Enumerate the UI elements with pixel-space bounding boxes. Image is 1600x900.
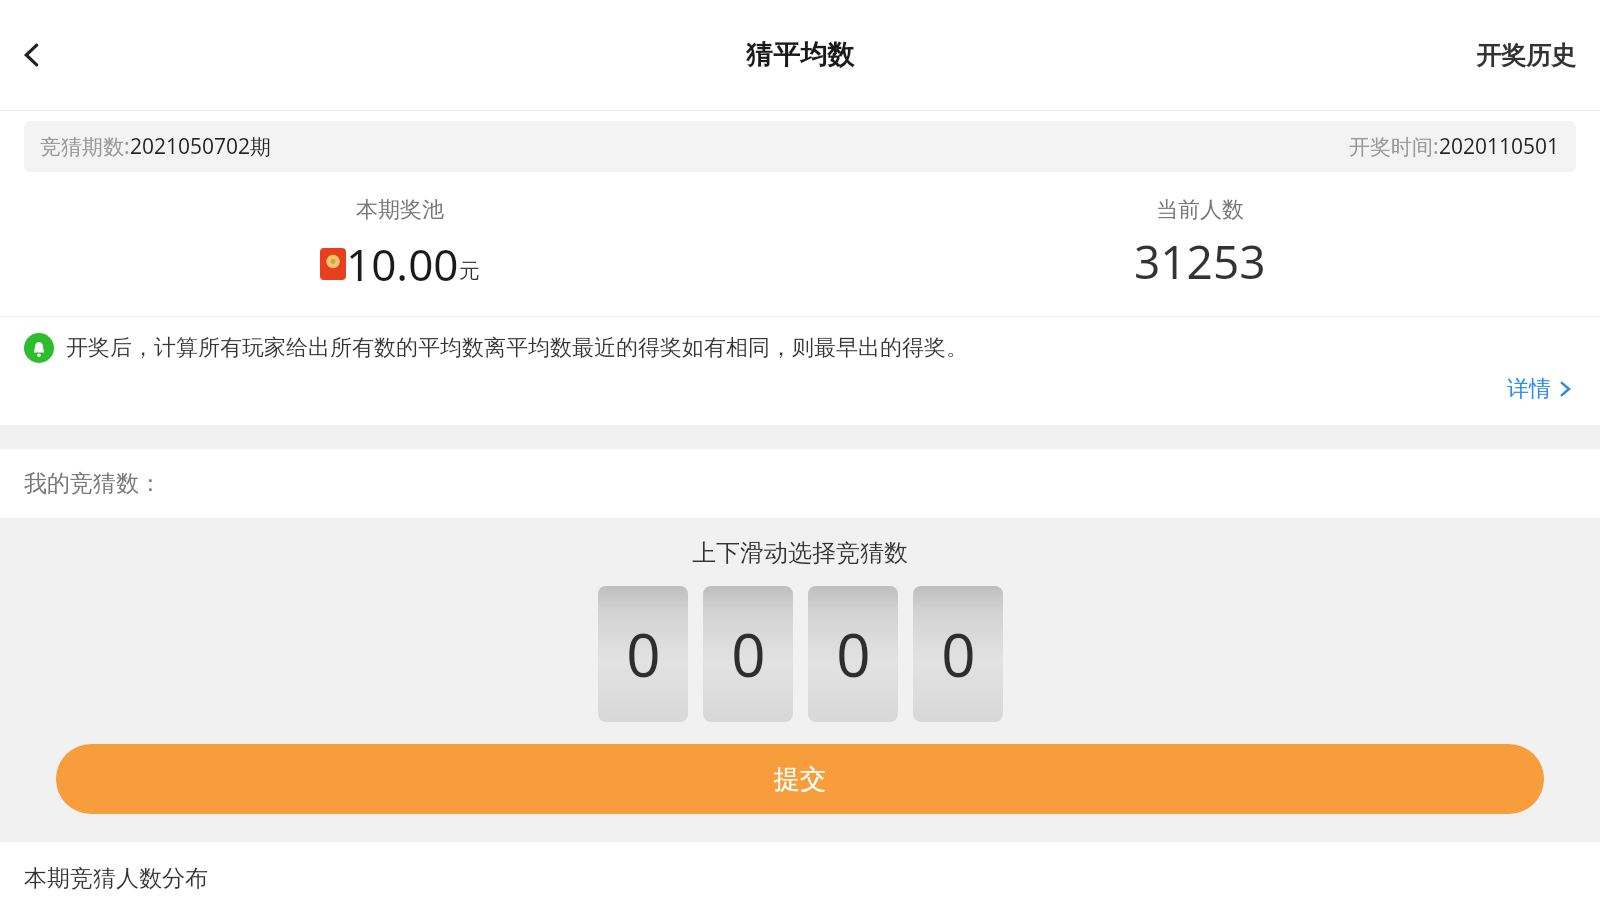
staticText: 31253 [1134, 230, 1266, 293]
staticText: 竞猜期数: [40, 132, 130, 161]
staticText: 0 [941, 613, 976, 695]
staticText: 猜平均数 [746, 38, 854, 72]
button[interactable]: Back [4, 27, 60, 83]
staticText: 0 [731, 613, 766, 695]
staticText: 开奖历史 [1476, 40, 1576, 71]
button[interactable]: 0 [703, 586, 793, 722]
staticText: 提交 [774, 763, 826, 796]
staticText: 本期奖池 [356, 196, 444, 224]
button[interactable]: 0 [808, 586, 898, 722]
staticText: 0 [626, 613, 661, 695]
staticText: 2020110501 [1439, 132, 1560, 161]
staticText: 上下滑动选择竞猜数 [692, 538, 908, 568]
button[interactable]: 0 [913, 586, 1003, 722]
staticText: 0 [836, 613, 871, 695]
button[interactable]: 开奖历史 [1452, 26, 1600, 85]
staticText: 10.00 [346, 234, 459, 294]
staticText: 详情 [1507, 375, 1551, 403]
staticText: 开奖后，计算所有玩家给出所有数的平均数离平均数最近的得奖如有相同，则最早出的得奖… [66, 334, 968, 362]
button[interactable]: 提交 [56, 744, 1544, 814]
staticText: 元 [459, 258, 480, 284]
staticText: 本期竞猜人数分布 [24, 864, 208, 893]
staticText: 当前人数 [1156, 196, 1244, 224]
button[interactable]: 0 [598, 586, 688, 722]
staticText: 开奖时间: [1349, 132, 1439, 161]
button[interactable]: 详情 [1499, 369, 1582, 409]
staticText: 我的竞猜数： [24, 469, 162, 498]
staticText: 2021050702期 [130, 132, 272, 161]
